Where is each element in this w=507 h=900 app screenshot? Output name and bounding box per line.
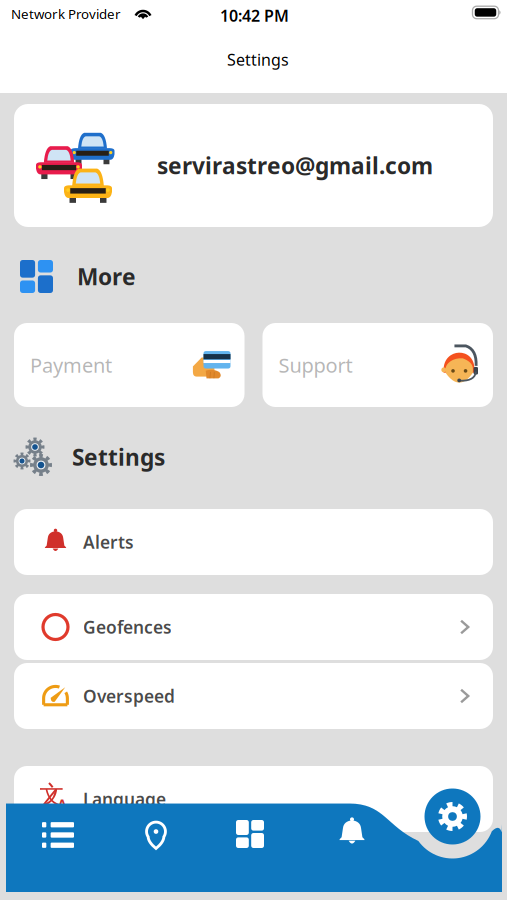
staticText: Alerts [83,530,134,553]
button[interactable]: Overspeed [14,663,493,729]
staticText: Settings [227,49,289,70]
button[interactable]: servirastreo@gmail.com [14,104,493,227]
button[interactable]: Support [262,323,493,407]
button[interactable]: Settings [424,788,480,844]
button[interactable]: Alerts [14,509,493,575]
button[interactable]: Payment [14,323,244,407]
staticText: Overspeed [83,684,175,707]
staticText: Support [278,352,352,378]
staticText: Geofences [83,615,172,638]
staticText: Network Provider [11,5,121,23]
button[interactable]: Alerts [322,809,382,857]
staticText: servirastreo@gmail.com [157,150,433,180]
button[interactable]: Map [126,811,186,859]
staticText: 文 [39,780,64,811]
staticText: Settings [72,442,165,472]
button[interactable]: List [28,811,88,859]
staticText: A [57,795,68,816]
staticText: 10:42 PM [220,5,289,26]
button[interactable]: Geofences [14,594,493,660]
button[interactable]: More [220,810,280,858]
staticText: More [77,261,136,291]
staticText: Payment [30,352,112,378]
staticText: Language [83,787,166,810]
button[interactable]: 文 [14,766,493,832]
